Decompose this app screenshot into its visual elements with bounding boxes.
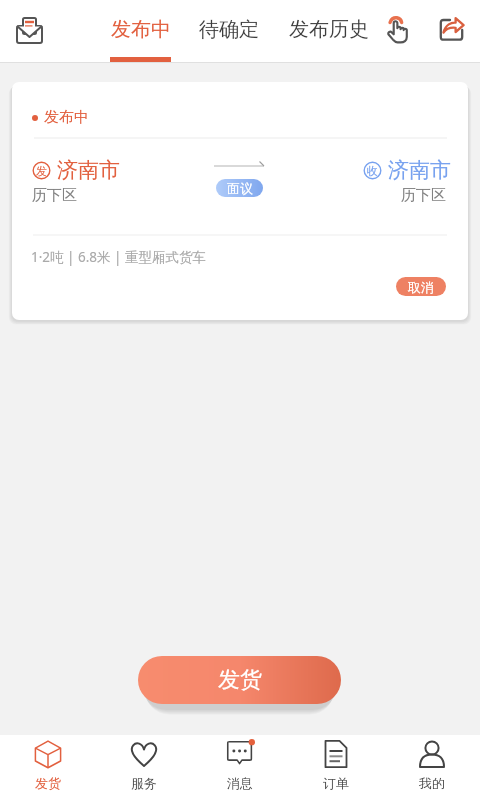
staticText: 发布中	[44, 108, 89, 127]
staticText: 发	[36, 164, 47, 178]
button[interactable]: Share	[437, 14, 467, 44]
button[interactable]: Mail	[13, 12, 47, 46]
staticText: 消息	[227, 775, 253, 791]
button[interactable]: 发货	[0, 735, 96, 800]
staticText: 服务	[131, 775, 157, 791]
button[interactable]: 发布中	[12, 82, 468, 320]
staticText: 济南市	[57, 157, 120, 183]
staticText: 订单	[323, 775, 349, 791]
button[interactable]: 消息	[192, 735, 288, 800]
staticText: 发布历史	[289, 17, 369, 42]
staticText: 发货	[218, 666, 262, 694]
button[interactable]: 我的	[384, 735, 480, 800]
button[interactable]: 面议	[216, 179, 263, 197]
staticText: 取消	[408, 279, 434, 295]
button[interactable]: Tap	[382, 14, 414, 46]
staticText: 待确定	[199, 17, 259, 42]
button[interactable]: 服务	[96, 735, 192, 800]
button[interactable]: 发货	[138, 656, 341, 704]
button[interactable]: 发布历史	[288, 0, 369, 62]
button[interactable]: 发布中	[110, 0, 171, 62]
staticText: 收	[367, 164, 378, 178]
staticText: 历下区	[401, 186, 446, 205]
staticText: 面议	[227, 180, 253, 196]
button[interactable]: 取消	[396, 277, 446, 296]
button[interactable]: 待确定	[198, 0, 259, 62]
button[interactable]: 订单	[288, 735, 384, 800]
staticText: 我的	[419, 775, 445, 791]
staticText: 1·2吨 | 6.8米 | 重型厢式货车	[31, 248, 207, 266]
staticText: 发货	[35, 775, 61, 791]
staticText: 发布中	[111, 17, 171, 42]
staticText: 历下区	[32, 186, 77, 205]
staticText: 济南市	[388, 157, 451, 183]
